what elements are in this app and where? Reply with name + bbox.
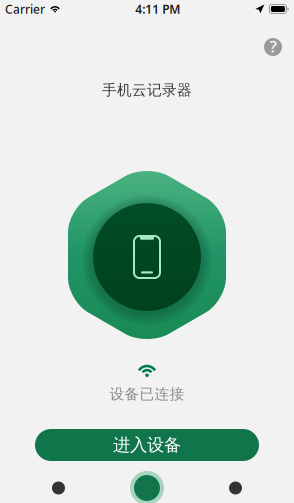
staticText: 进入设备 bbox=[113, 434, 181, 456]
staticText: 手机云记录器 bbox=[102, 81, 192, 99]
staticText: ? bbox=[269, 36, 276, 57]
button[interactable]: Add device bbox=[127, 468, 167, 503]
staticText: 设备已连接 bbox=[109, 385, 184, 403]
staticText: Carrier bbox=[5, 1, 45, 17]
button[interactable]: 进入设备 bbox=[35, 429, 259, 461]
button[interactable]: Settings bbox=[177, 473, 294, 503]
button[interactable]: Help bbox=[256, 30, 290, 64]
staticText: 4:11 PM bbox=[135, 1, 180, 17]
button[interactable]: Devices bbox=[0, 473, 117, 503]
